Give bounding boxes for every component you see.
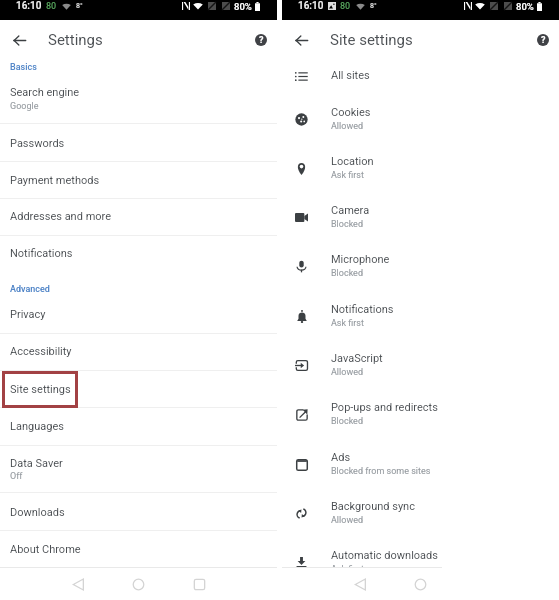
- staticText: 80%: [516, 1, 534, 12]
- button[interactable]: Back: [69, 575, 87, 593]
- button[interactable]: Camera: [282, 187, 559, 236]
- button[interactable]: Notifications: [282, 286, 559, 335]
- staticText: 80: [46, 1, 57, 12]
- staticText: Languages: [10, 420, 64, 433]
- staticText: Allowed: [331, 367, 363, 378]
- staticText: Passwords: [10, 137, 65, 150]
- staticText: Blocked: [331, 219, 363, 230]
- button[interactable]: Payment methods: [0, 162, 277, 199]
- staticText: Site settings: [10, 383, 71, 396]
- button[interactable]: Privacy: [0, 300, 277, 333]
- button[interactable]: Help: [534, 31, 552, 49]
- staticText: Off: [10, 471, 23, 482]
- staticText: Google: [10, 101, 39, 112]
- button[interactable]: Location: [282, 138, 559, 187]
- button[interactable]: JavaScript: [282, 335, 559, 384]
- button[interactable]: Home: [129, 575, 147, 593]
- staticText: Addresses and more: [10, 210, 112, 223]
- button[interactable]: Ads: [282, 434, 559, 483]
- button[interactable]: Recent apps: [190, 575, 208, 593]
- button[interactable]: Cookies: [282, 89, 559, 138]
- staticText: Privacy: [10, 308, 46, 321]
- button[interactable]: Data Saver: [0, 446, 277, 493]
- button[interactable]: Site settings: [0, 371, 277, 407]
- staticText: Microphone: [331, 253, 390, 266]
- staticText: 8°: [76, 2, 83, 10]
- staticText: Data Saver: [10, 457, 63, 470]
- staticText: Settings: [48, 31, 103, 49]
- staticText: Allowed: [331, 121, 363, 132]
- staticText: Ask first: [331, 170, 364, 181]
- button[interactable]: Back: [8, 29, 30, 51]
- staticText: Ask first: [331, 318, 364, 329]
- button[interactable]: Back: [290, 29, 312, 51]
- staticText: Allowed: [331, 515, 363, 526]
- button[interactable]: Notifications: [0, 236, 277, 272]
- staticText: Basics: [10, 62, 37, 73]
- staticText: Advanced: [10, 284, 50, 295]
- staticText: 8°: [370, 2, 377, 10]
- staticText: Ask first: [331, 564, 364, 575]
- button[interactable]: Pop-ups and redirects: [282, 384, 559, 433]
- staticText: Blocked: [331, 268, 363, 279]
- button[interactable]: Search engine: [0, 60, 277, 123]
- button[interactable]: Automatic downloads: [282, 532, 559, 581]
- staticText: ?: [259, 35, 264, 46]
- button[interactable]: Passwords: [0, 124, 277, 161]
- staticText: ?: [541, 35, 546, 46]
- button[interactable]: About Chrome: [0, 531, 277, 567]
- staticText: Background sync: [331, 500, 415, 513]
- staticText: 80: [340, 1, 351, 12]
- button[interactable]: Back: [351, 575, 369, 593]
- staticText: Blocked: [331, 416, 363, 427]
- staticText: Automatic downloads: [331, 549, 438, 562]
- staticText: Notifications: [10, 247, 73, 260]
- staticText: Pop-ups and redirects: [331, 401, 438, 414]
- staticText: Search engine: [10, 86, 80, 99]
- staticText: About Chrome: [10, 543, 81, 556]
- staticText: 16:10: [298, 0, 324, 12]
- button[interactable]: All sites: [282, 52, 559, 101]
- button[interactable]: Microphone: [282, 236, 559, 285]
- staticText: JavaScript: [331, 352, 383, 365]
- staticText: 16:10: [16, 0, 42, 12]
- staticText: Notifications: [331, 303, 394, 316]
- button[interactable]: Languages: [0, 408, 277, 445]
- button[interactable]: Home: [411, 575, 429, 593]
- staticText: All sites: [331, 69, 370, 82]
- staticText: Blocked from some sites: [331, 466, 431, 477]
- button[interactable]: Help: [252, 31, 270, 49]
- staticText: Location: [331, 155, 374, 168]
- staticText: Cookies: [331, 106, 371, 119]
- staticText: Site settings: [330, 31, 413, 49]
- staticText: 80%: [234, 1, 252, 12]
- button[interactable]: Accessibility: [0, 334, 277, 370]
- staticText: Accessibility: [10, 345, 72, 358]
- button[interactable]: Addresses and more: [0, 199, 277, 235]
- staticText: Payment methods: [10, 174, 100, 187]
- staticText: Downloads: [10, 506, 65, 519]
- button[interactable]: Downloads: [0, 493, 277, 530]
- button[interactable]: Background sync: [282, 483, 559, 532]
- staticText: Ads: [331, 451, 351, 464]
- staticText: Camera: [331, 204, 370, 217]
